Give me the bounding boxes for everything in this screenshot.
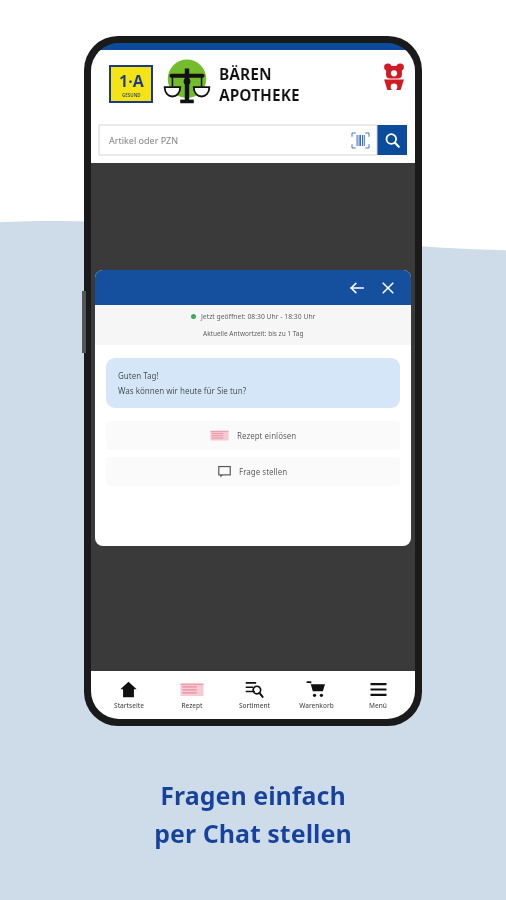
button[interactable]: Schließen xyxy=(377,277,399,299)
button[interactable]: Menü xyxy=(347,671,409,719)
staticText: Guten Tag! xyxy=(118,370,159,381)
button[interactable]: Frage stellen xyxy=(106,457,400,486)
button[interactable]: Startseite xyxy=(97,671,160,719)
button[interactable]: Sortiment xyxy=(223,671,285,719)
button[interactable]: Artikel oder PZN xyxy=(99,125,377,155)
button[interactable]: Warenkorb xyxy=(285,671,347,719)
button[interactable]: Rezept xyxy=(160,671,223,719)
staticText: Menü xyxy=(369,701,387,710)
staticText: Aktuelle Antwortzeit: bis zu 1 Tag xyxy=(203,329,304,338)
staticText: Warenkorb xyxy=(299,701,334,710)
staticText: Frage stellen xyxy=(239,466,288,477)
button[interactable]: Suchen xyxy=(377,125,407,155)
staticText: GESUND xyxy=(122,92,141,98)
staticText: Rezept einlösen xyxy=(237,430,297,441)
staticText: Jetzt geöffnet: 08:30 Uhr - 18:30 Uhr xyxy=(201,312,316,321)
staticText: Artikel oder PZN xyxy=(109,134,179,146)
staticText: Was können wir heute für Sie tun? xyxy=(118,385,247,396)
button[interactable]: Zurück xyxy=(346,277,368,299)
staticText: Startseite xyxy=(114,701,144,710)
staticText: BÄREN xyxy=(219,63,272,84)
staticText: per Chat stellen xyxy=(154,816,352,850)
staticText: Sortiment xyxy=(239,701,270,710)
staticText: Fragen einfach xyxy=(160,778,346,812)
button[interactable]: Rezept einlösen xyxy=(106,421,400,450)
staticText: 1·A xyxy=(119,70,144,92)
staticText: APOTHEKE xyxy=(219,84,300,105)
staticText: Rezept xyxy=(181,701,203,710)
